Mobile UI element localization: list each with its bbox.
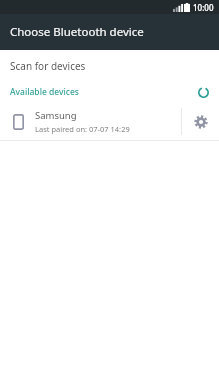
staticText: Scan for devices (10, 59, 86, 73)
button[interactable]: Device settings (182, 103, 219, 140)
button[interactable]: Scan for devices (0, 50, 219, 81)
button[interactable]: Samsung (0, 103, 181, 140)
staticText: Available devices (10, 86, 79, 98)
other: Scanning for devices (198, 87, 209, 98)
staticText: Choose Bluetooth device (10, 24, 144, 40)
staticText: 10:00 (193, 2, 214, 13)
staticText: Last paired on: 07-07 14:29 (35, 124, 130, 134)
staticText: Samsung (35, 109, 77, 122)
